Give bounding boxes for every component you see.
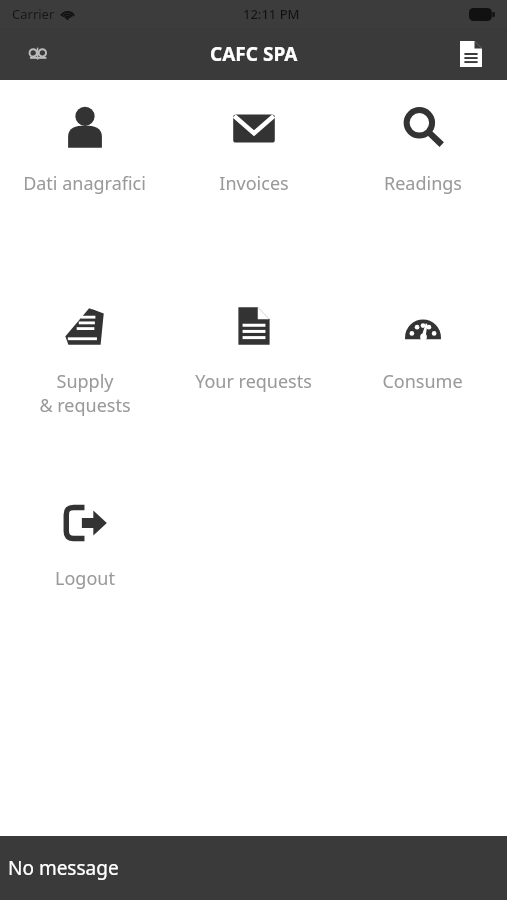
staticText: Logout — [55, 566, 115, 591]
button[interactable]: Invoices — [169, 98, 338, 200]
button[interactable]: Documents — [451, 34, 491, 74]
button[interactable]: Your requests — [169, 296, 338, 398]
staticText: Readings — [384, 171, 462, 196]
button[interactable]: Readings — [338, 98, 507, 200]
button[interactable]: Supply & requests — [0, 296, 169, 421]
staticText: Carrier — [12, 5, 55, 23]
button[interactable]: Menu — [18, 34, 58, 74]
staticText: No message — [8, 855, 119, 881]
button[interactable]: Logout — [0, 493, 169, 595]
button[interactable]: Dati anagrafici — [0, 98, 169, 200]
staticText: Supply & requests — [39, 369, 131, 417]
staticText: 12:11 PM — [243, 5, 300, 23]
staticText: Invoices — [219, 171, 289, 196]
staticText: Dati anagrafici — [23, 171, 146, 196]
button[interactable]: Consume — [338, 296, 507, 398]
staticText: Your requests — [195, 369, 312, 394]
button[interactable]: No message — [0, 836, 507, 900]
staticText: CAFC SPA — [210, 41, 298, 67]
staticText: Consume — [382, 369, 463, 394]
